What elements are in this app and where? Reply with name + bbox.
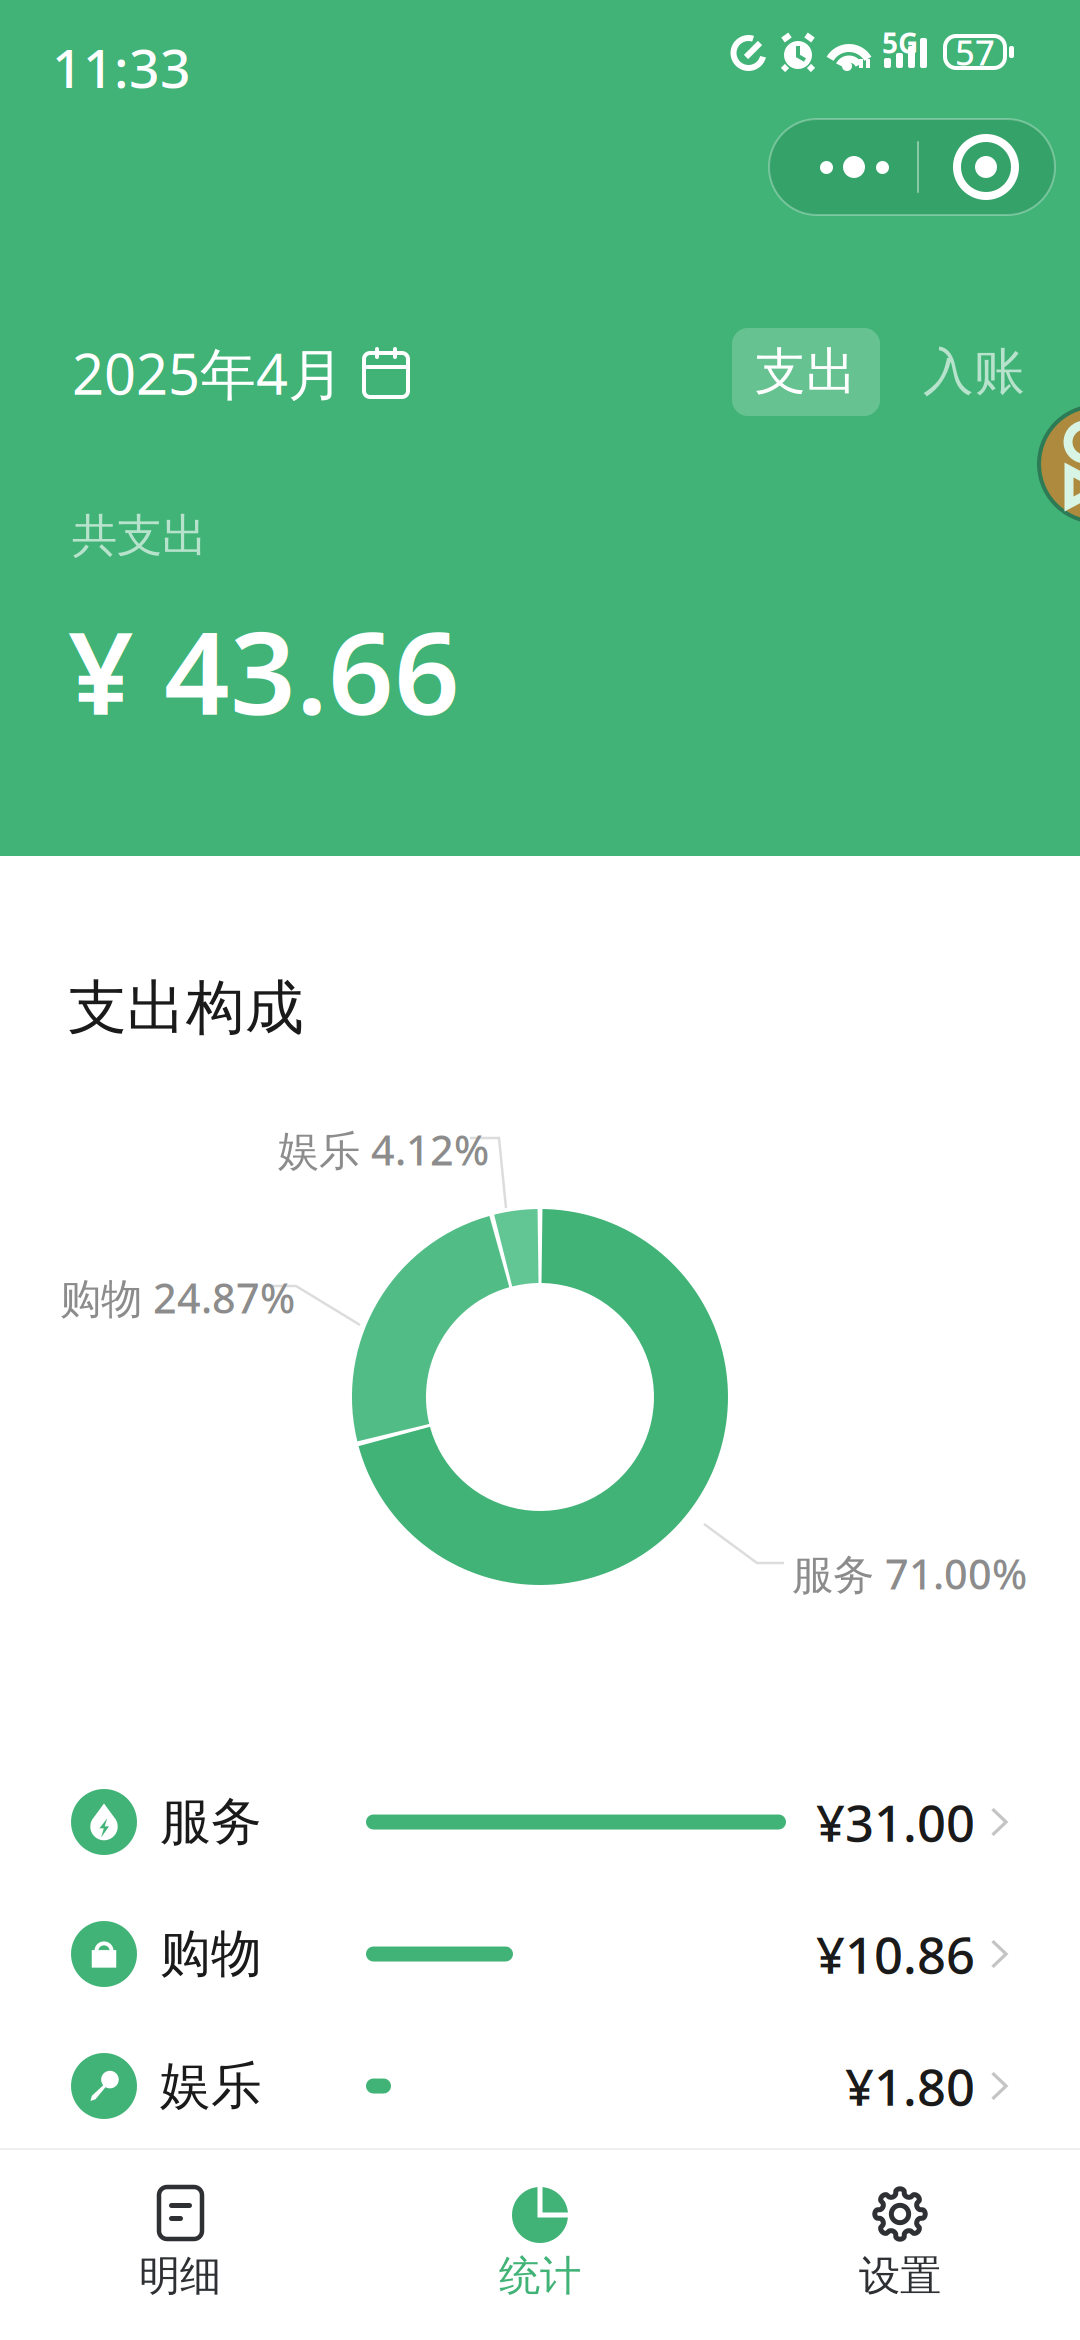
staticText: 娱乐 4.12% xyxy=(278,1122,489,1177)
staticText: 5G xyxy=(882,24,918,61)
button[interactable]: 娱乐 xyxy=(0,2020,1080,2152)
button[interactable]: 支出 xyxy=(732,328,880,416)
button[interactable]: 购物 xyxy=(0,1888,1080,2020)
staticText: ¥ 43.66 xyxy=(68,594,460,746)
button[interactable]: More xyxy=(769,119,1055,215)
button[interactable]: 设置 xyxy=(720,2150,1080,2340)
staticText: 服务 71.00% xyxy=(792,1546,1027,1601)
button[interactable]: 服务 xyxy=(0,1756,1080,1888)
staticText: 统计 xyxy=(499,2251,581,2301)
staticText: 购物 24.87% xyxy=(60,1270,295,1325)
staticText: 支出构成 xyxy=(68,972,304,1044)
staticText: ¥31.00 xyxy=(816,1788,975,1856)
staticText: 入账 xyxy=(923,341,1025,403)
staticText: 明细 xyxy=(139,2251,221,2301)
staticText: 11:33 xyxy=(52,32,191,103)
button[interactable]: 明细 xyxy=(0,2150,360,2340)
staticText: 57 xyxy=(955,29,995,75)
staticText: 共支出 xyxy=(72,508,207,564)
staticText: 娱乐 xyxy=(160,2055,262,2117)
staticText: ¥1.80 xyxy=(845,2052,975,2120)
staticText: 设置 xyxy=(859,2251,941,2301)
staticText: 支出 xyxy=(755,341,857,403)
button[interactable]: 统计 xyxy=(360,2150,720,2340)
staticText: 购物 xyxy=(160,1923,262,1985)
button[interactable]: 2025年4月 xyxy=(72,330,408,416)
staticText: 服务 xyxy=(160,1791,262,1853)
staticText: 2025年4月 xyxy=(72,336,344,410)
button[interactable]: 入账 xyxy=(900,328,1048,416)
staticText: ¥10.86 xyxy=(816,1920,975,1988)
